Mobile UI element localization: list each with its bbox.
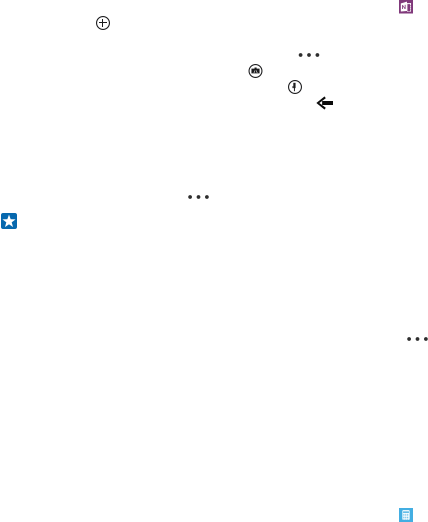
button[interactable]: Add — [96, 16, 110, 30]
button[interactable]: Camera — [248, 64, 262, 78]
button[interactable]: More — [188, 195, 209, 199]
button[interactable]: More actions — [407, 337, 428, 341]
button[interactable]: Back — [316, 96, 333, 110]
button[interactable]: More options — [299, 53, 319, 57]
button[interactable]: OneNote — [399, 0, 413, 13]
button[interactable]: Favorites — [1, 213, 17, 229]
button[interactable]: Microphone — [288, 80, 302, 94]
button[interactable]: Calculator — [399, 508, 413, 522]
